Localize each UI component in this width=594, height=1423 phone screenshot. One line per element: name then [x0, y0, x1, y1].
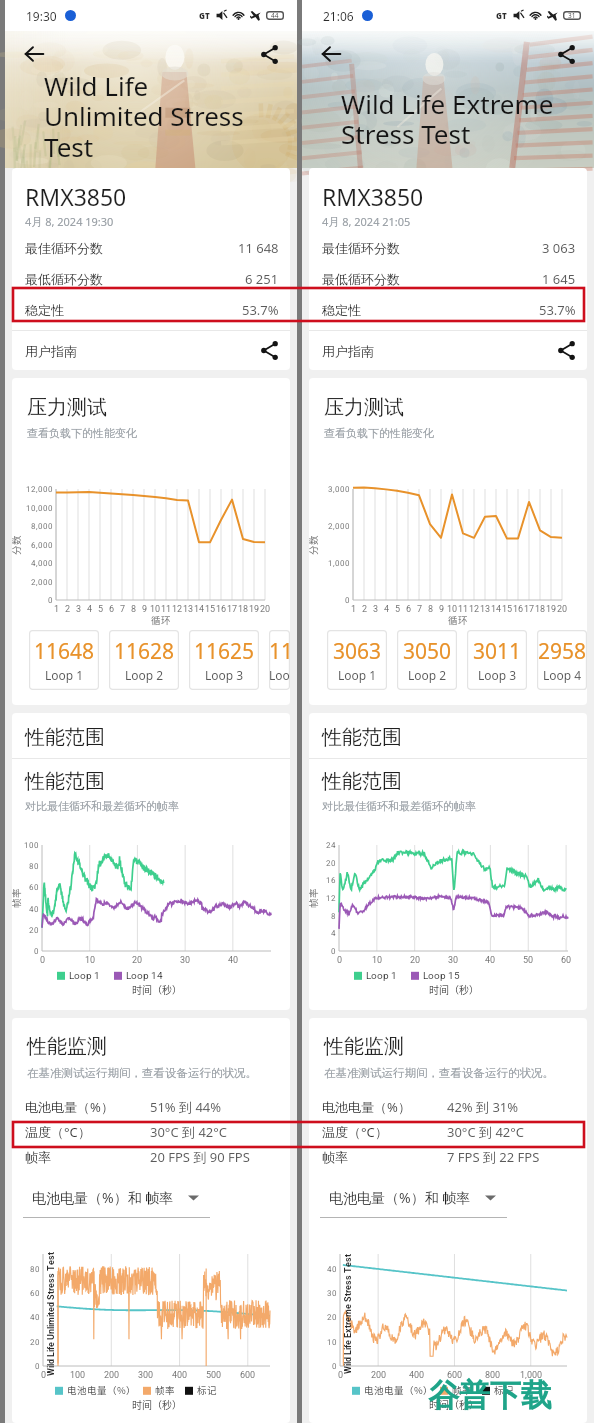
button[interactable]: 3063 — [327, 630, 387, 690]
staticText: 11648 — [34, 637, 95, 666]
staticText: GT — [496, 10, 507, 21]
staticText: 电池电量（%） — [322, 1098, 447, 1116]
staticText: 最佳循环分数 — [322, 240, 400, 256]
button[interactable]: 11625 — [189, 630, 259, 690]
staticText: 44 — [271, 11, 279, 20]
staticText: 31 — [568, 11, 576, 20]
staticText: 谷普下载 — [428, 1376, 552, 1415]
button[interactable]: 3050 — [397, 630, 457, 690]
staticText: 性能范围 — [25, 725, 105, 750]
staticText: 压力测试 — [324, 395, 404, 420]
staticText: Loop 4 — [269, 667, 290, 683]
staticText: 稳定性 — [25, 302, 64, 318]
staticText: 性能监测 — [27, 1034, 107, 1059]
staticText: 4月 8, 2024 19:30 — [25, 214, 114, 229]
staticText: 6 251 — [245, 270, 279, 288]
staticText: 性能范围 — [322, 769, 402, 794]
staticText: 用户指南 — [25, 343, 77, 359]
staticText: Loop 3 — [478, 667, 517, 683]
button[interactable]: 电池电量（%）和 帧率 — [329, 1188, 496, 1207]
staticText: 3 063 — [542, 239, 576, 257]
button[interactable]: Share — [553, 41, 579, 67]
staticText: 53.7% — [539, 301, 576, 319]
staticText: 11625 — [194, 637, 255, 666]
staticText: Loop 2 — [125, 667, 164, 683]
staticText: 稳定性 — [322, 302, 361, 318]
staticText: 最佳循环分数 — [25, 240, 103, 256]
button[interactable]: 11622 — [269, 630, 290, 690]
staticText: 11628 — [114, 637, 175, 666]
staticText: 帧率 — [25, 1149, 150, 1165]
staticText: Loop 1 — [338, 667, 377, 683]
staticText: Wild Life Extreme Stress Test — [341, 86, 554, 152]
staticText: Loop 4 — [543, 667, 582, 683]
staticText: 性能范围 — [322, 725, 402, 750]
staticText: 温度（°C） — [322, 1123, 447, 1141]
staticText: 51% 到 44% — [150, 1098, 222, 1116]
staticText: 性能范围 — [25, 769, 105, 794]
staticText: 3063 — [333, 637, 382, 666]
staticText: 对比最佳循环和最差循环的帧率 — [322, 799, 476, 813]
button[interactable]: 用户指南 — [12, 331, 290, 370]
staticText: 53.7% — [242, 301, 279, 319]
staticText: 在基准测试运行期间，查看设备运行的状况。 — [27, 1066, 257, 1080]
staticText: 1 645 — [542, 270, 576, 288]
staticText: 电池电量（%） — [25, 1098, 150, 1116]
button[interactable]: 11648 — [29, 630, 99, 690]
staticText: 3050 — [403, 637, 452, 666]
staticText: RMX3850 — [322, 181, 424, 212]
staticText: 30°C 到 42°C — [150, 1123, 228, 1141]
button[interactable]: 用户指南 — [309, 331, 587, 370]
staticText: 压力测试 — [27, 395, 107, 420]
button[interactable]: 3011 — [467, 630, 527, 690]
staticText: 11 648 — [238, 239, 279, 257]
staticText: 最低循环分数 — [322, 271, 400, 287]
staticText: 查看负载下的性能变化 — [27, 426, 137, 440]
staticText: 30°C 到 42°C — [447, 1123, 525, 1141]
button[interactable]: 电池电量（%）和 帧率 — [32, 1188, 199, 1207]
button[interactable]: 11628 — [109, 630, 179, 690]
staticText: Loop 2 — [408, 667, 447, 683]
staticText: 2958 — [538, 637, 587, 666]
button[interactable]: Back — [21, 41, 47, 67]
staticText: 在基准测试运行期间，查看设备运行的状况。 — [324, 1066, 554, 1080]
button[interactable]: Share — [256, 41, 282, 67]
staticText: Loop 3 — [205, 667, 244, 683]
staticText: 温度（°C） — [25, 1123, 150, 1141]
staticText: 查看负载下的性能变化 — [324, 426, 434, 440]
staticText: 用户指南 — [322, 343, 374, 359]
staticText: RMX3850 — [25, 181, 127, 212]
button[interactable]: 2958 — [537, 630, 587, 690]
staticText: 电池电量（%）和 帧率 — [329, 1188, 471, 1207]
staticText: 19:30 — [26, 8, 57, 24]
staticText: 3011 — [473, 637, 522, 666]
staticText: 性能监测 — [324, 1034, 404, 1059]
staticText: 20 FPS 到 90 FPS — [150, 1148, 250, 1166]
staticText: 最低循环分数 — [25, 271, 103, 287]
staticText: 帧率 — [322, 1149, 447, 1165]
staticText: 7 FPS 到 22 FPS — [447, 1148, 540, 1166]
staticText: 11622 — [269, 637, 290, 666]
staticText: 电池电量（%）和 帧率 — [32, 1188, 174, 1207]
staticText: 21:06 — [323, 8, 354, 24]
staticText: 4月 8, 2024 21:05 — [322, 214, 411, 229]
button[interactable]: Back — [318, 41, 344, 67]
staticText: 对比最佳循环和最差循环的帧率 — [25, 799, 179, 813]
staticText: Wild Life Unlimited Stress Test — [44, 68, 244, 165]
staticText: 42% 到 31% — [447, 1098, 519, 1116]
staticText: GT — [199, 10, 210, 21]
staticText: Loop 1 — [45, 667, 84, 683]
